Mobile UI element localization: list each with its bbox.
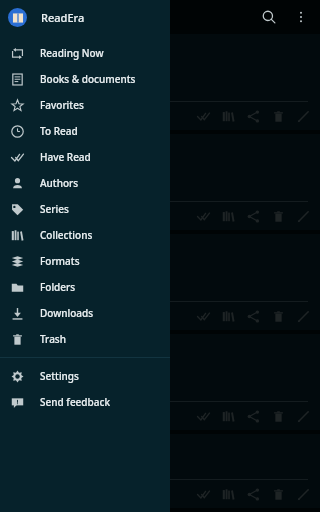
button[interactable]: Mark read: [191, 480, 216, 508]
staticText: Authors: [40, 176, 79, 190]
staticText: To Read: [40, 124, 78, 138]
button[interactable]: Share: [241, 302, 266, 330]
button[interactable]: Share: [241, 402, 266, 430]
button[interactable]: Delete: [266, 102, 291, 130]
button[interactable]: Share: [241, 102, 266, 130]
button[interactable]: To Read: [0, 118, 170, 144]
button[interactable]: Folders: [0, 274, 170, 300]
button[interactable]: Search: [252, 0, 286, 34]
staticText: Reading Now: [40, 46, 104, 60]
button[interactable]: Settings: [0, 363, 170, 389]
button[interactable]: Collections: [0, 222, 170, 248]
button[interactable]: More options: [286, 2, 316, 32]
button[interactable]: Share: [241, 202, 266, 230]
button[interactable]: Share: [241, 480, 266, 508]
button[interactable]: Mark read: [0, 234, 320, 330]
button[interactable]: Mark read: [191, 202, 216, 230]
button[interactable]: Edit: [291, 402, 316, 430]
button[interactable]: Collections: [216, 302, 241, 330]
button[interactable]: Mark read: [0, 34, 320, 130]
button[interactable]: Collections: [216, 402, 241, 430]
button[interactable]: Formats: [0, 248, 170, 274]
button[interactable]: Send feedback: [0, 389, 170, 415]
button[interactable]: Books & documents: [0, 66, 170, 92]
button[interactable]: Mark read: [191, 302, 216, 330]
staticText: Collections: [40, 228, 93, 242]
button[interactable]: Edit: [291, 480, 316, 508]
staticText: Settings: [40, 369, 79, 383]
button[interactable]: Collections: [216, 480, 241, 508]
button[interactable]: Delete: [266, 202, 291, 230]
button[interactable]: Authors: [0, 170, 170, 196]
button[interactable]: Trash: [0, 326, 170, 352]
button[interactable]: Mark read: [191, 102, 216, 130]
button[interactable]: Delete: [266, 402, 291, 430]
button[interactable]: ReadEra: [0, 0, 170, 34]
button[interactable]: Downloads: [0, 300, 170, 326]
staticText: Trash: [40, 332, 66, 346]
staticText: Books & documents: [40, 72, 136, 86]
button[interactable]: Have Read: [0, 144, 170, 170]
staticText: Series: [40, 202, 69, 216]
button[interactable]: Collections: [216, 202, 241, 230]
button[interactable]: Mark read: [0, 334, 320, 430]
button[interactable]: Favorites: [0, 92, 170, 118]
button[interactable]: Mark read: [0, 134, 320, 230]
staticText: Formats: [40, 254, 80, 268]
button[interactable]: Edit: [291, 102, 316, 130]
staticText: Favorites: [40, 98, 84, 112]
button[interactable]: Reading Now: [0, 40, 170, 66]
staticText: ReadEra: [41, 10, 85, 25]
button[interactable]: Delete: [266, 302, 291, 330]
button[interactable]: Mark read: [191, 402, 216, 430]
button[interactable]: Collections: [216, 102, 241, 130]
button[interactable]: Delete: [266, 480, 291, 508]
staticText: Have Read: [40, 150, 91, 164]
button[interactable]: Edit: [291, 302, 316, 330]
button[interactable]: Edit: [291, 202, 316, 230]
staticText: Send feedback: [40, 395, 110, 409]
staticText: Folders: [40, 280, 76, 294]
button[interactable]: Series: [0, 196, 170, 222]
staticText: Downloads: [40, 306, 94, 320]
button[interactable]: Mark read: [0, 434, 320, 508]
